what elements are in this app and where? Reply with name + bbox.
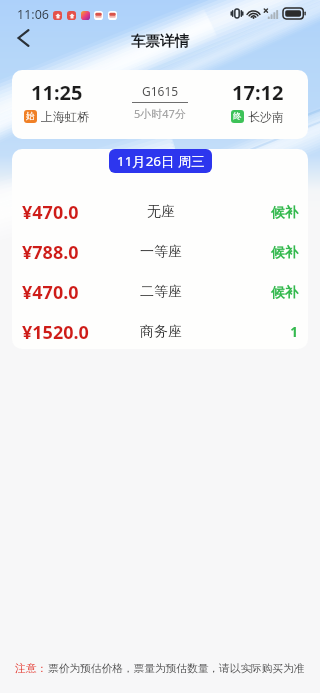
staticText: ¥470.0 — [22, 200, 112, 225]
staticText: 一等座 — [140, 243, 182, 261]
button[interactable]: Back — [7, 22, 39, 54]
staticText: 11:06 — [17, 6, 49, 23]
button[interactable]: ¥470.0 — [12, 273, 308, 311]
staticText: 长沙南 — [248, 109, 284, 124]
button[interactable]: ¥788.0 — [12, 233, 308, 271]
staticText: 候补 — [228, 284, 298, 301]
staticText: 11月26日 周三 — [117, 152, 205, 170]
staticText: 11:25 — [31, 79, 83, 106]
staticText: 票价为预估价格，票量为预估数量，请以实际购买为准 — [48, 662, 305, 675]
staticText: 二等座 — [140, 283, 182, 301]
staticText: 始 — [26, 111, 35, 122]
staticText: 终 — [233, 111, 242, 122]
staticText: 候补 — [228, 204, 298, 221]
button[interactable]: ¥470.0 — [12, 193, 308, 231]
staticText: 注意： — [15, 662, 48, 675]
staticText: 17:12 — [232, 79, 284, 106]
staticText: 无座 — [147, 203, 175, 221]
staticText: 候补 — [228, 244, 298, 261]
staticText: 商务座 — [140, 323, 182, 341]
staticText: 5小时47分 — [134, 106, 186, 121]
staticText: 1 — [228, 323, 298, 341]
staticText: ¥788.0 — [22, 240, 112, 265]
staticText: G1615 — [142, 83, 179, 99]
button[interactable]: 11:25 — [12, 70, 308, 139]
staticText: ¥1520.0 — [22, 320, 112, 345]
button[interactable]: ¥1520.0 — [12, 313, 308, 349]
staticText: 上海虹桥 — [41, 109, 89, 124]
staticText: ¥470.0 — [22, 280, 112, 305]
button[interactable]: 11月26日 周三 — [109, 149, 212, 173]
staticText: 车票详情 — [131, 32, 189, 50]
